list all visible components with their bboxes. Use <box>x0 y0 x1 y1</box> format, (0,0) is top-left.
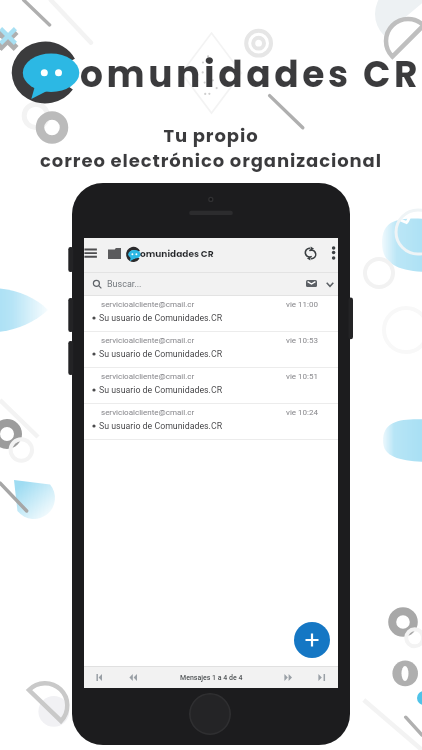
staticText: vie 10:24 <box>286 408 318 417</box>
staticText: servicioalcliente@cmail.cr <box>101 336 195 345</box>
button[interactable]: Refresh <box>299 242 321 264</box>
staticText: servicioalcliente@cmail.cr <box>101 408 195 417</box>
staticText: Buscar... <box>107 279 142 290</box>
button[interactable]: servicioalcliente@cmail.cr <box>84 368 338 404</box>
staticText: Su usuario de Comunidades.CR <box>99 349 223 359</box>
button[interactable]: Previous page <box>117 667 150 688</box>
staticText: vie 10:53 <box>286 336 318 345</box>
staticText: Su usuario de Comunidades.CR <box>99 385 223 395</box>
button[interactable]: servicioalcliente@cmail.cr <box>84 332 338 368</box>
staticText: Su usuario de Comunidades.CR <box>99 421 223 431</box>
staticText: correo electrónico organizacional <box>40 148 382 173</box>
button[interactable]: Next page <box>272 667 305 688</box>
button[interactable]: servicioalcliente@cmail.cr <box>84 296 338 332</box>
button[interactable]: First page <box>84 667 117 688</box>
staticText: vie 10:51 <box>286 372 318 381</box>
button[interactable]: Compose new message <box>294 622 330 658</box>
staticText: servicioalcliente@cmail.cr <box>101 372 195 381</box>
button[interactable]: Buscar... <box>84 273 338 295</box>
button[interactable]: Last page <box>305 667 338 688</box>
button[interactable]: servicioalcliente@cmail.cr <box>84 404 338 440</box>
staticText: Mensajes 1 a 4 de 4 <box>180 674 243 682</box>
button[interactable]: Expand <box>323 277 336 291</box>
staticText: Tu propio <box>163 123 259 148</box>
staticText: omunidades CR <box>140 248 214 261</box>
staticText: servicioalcliente@cmail.cr <box>101 300 195 309</box>
staticText: vie 11:00 <box>286 300 318 309</box>
button[interactable]: Navigation menu <box>81 242 101 268</box>
staticText: Su usuario de Comunidades.CR <box>99 313 223 323</box>
button[interactable]: Mail filter <box>306 280 317 287</box>
staticText: omunidades CR <box>80 49 422 99</box>
button[interactable]: More options <box>324 242 343 268</box>
